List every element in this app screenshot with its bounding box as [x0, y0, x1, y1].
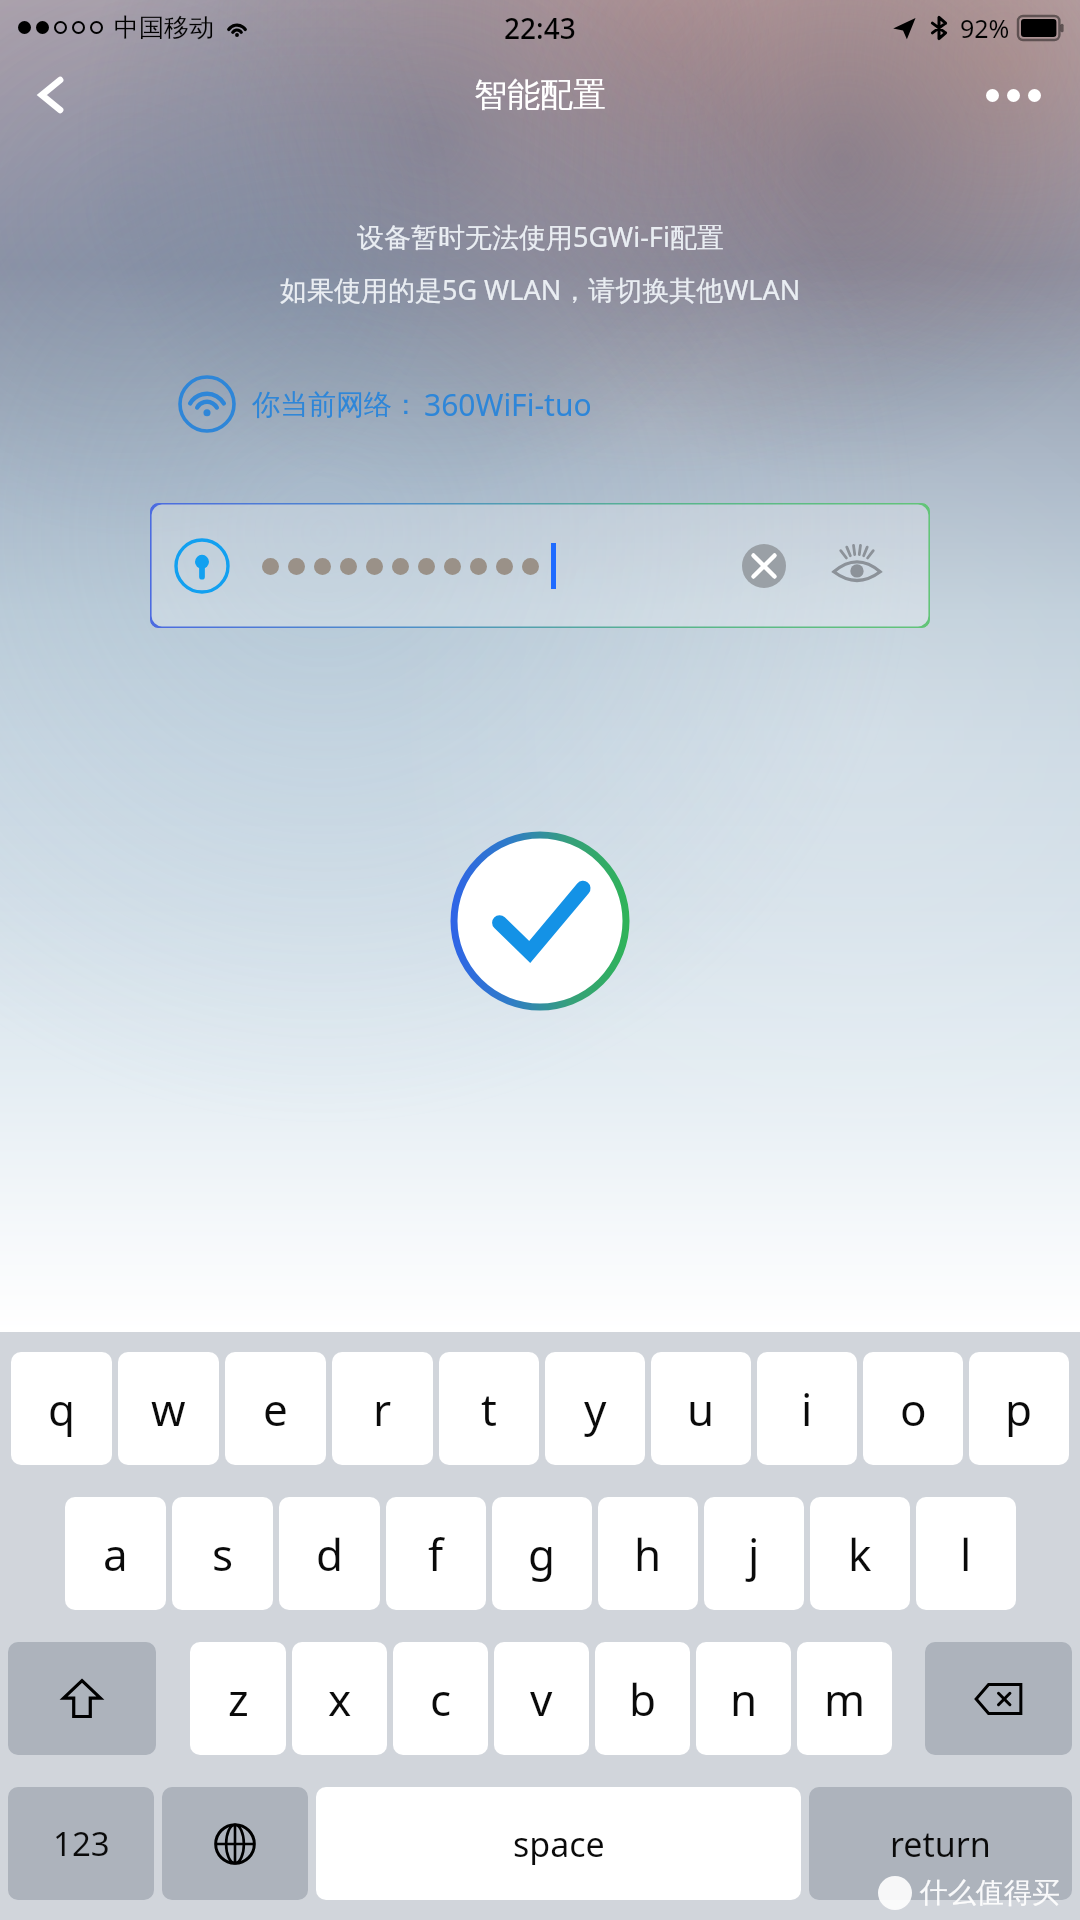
- button[interactable]: Clear: [732, 534, 796, 598]
- button[interactable]: 你当前网络：: [178, 370, 592, 438]
- button[interactable]: b: [595, 1642, 690, 1755]
- button[interactable]: e: [225, 1352, 326, 1465]
- staticText: z: [228, 1669, 249, 1729]
- staticText: f: [428, 1524, 444, 1584]
- staticText: s: [212, 1524, 234, 1584]
- staticText: g: [528, 1524, 556, 1584]
- staticText: p: [1005, 1379, 1033, 1439]
- button[interactable]: a: [65, 1497, 166, 1610]
- staticText: return: [890, 1821, 991, 1867]
- button[interactable]: u: [651, 1352, 751, 1465]
- button[interactable]: More options: [970, 60, 1056, 130]
- staticText: m: [824, 1669, 866, 1729]
- button[interactable]: i: [757, 1352, 857, 1465]
- staticText: w: [151, 1379, 186, 1439]
- button[interactable]: Back: [14, 57, 90, 133]
- button[interactable]: l: [916, 1497, 1016, 1610]
- button[interactable]: k: [810, 1497, 910, 1610]
- button[interactable]: space: [316, 1787, 801, 1900]
- staticText: u: [687, 1379, 715, 1439]
- staticText: l: [960, 1524, 972, 1584]
- button[interactable]: s: [172, 1497, 273, 1610]
- staticText: 你当前网络：: [252, 387, 420, 422]
- staticText: 123: [53, 1821, 110, 1866]
- staticText: q: [48, 1379, 76, 1439]
- button[interactable]: t: [439, 1352, 539, 1465]
- staticText: o: [900, 1379, 927, 1439]
- staticText: 360WiFi-tuo: [424, 384, 592, 425]
- button[interactable]: v: [494, 1642, 589, 1755]
- button[interactable]: w: [118, 1352, 219, 1465]
- button[interactable]: m: [797, 1642, 892, 1755]
- button[interactable]: r: [332, 1352, 433, 1465]
- button[interactable]: g: [492, 1497, 592, 1610]
- staticText: t: [481, 1379, 497, 1439]
- button[interactable]: z: [190, 1642, 286, 1755]
- staticText: 如果使用的是5G WLAN，请切换其他WLAN: [280, 271, 801, 308]
- button[interactable]: c: [393, 1642, 488, 1755]
- button[interactable]: Backspace: [925, 1642, 1072, 1755]
- button[interactable]: Show password: [820, 529, 894, 603]
- staticText: 什么值得买: [920, 1875, 1060, 1910]
- staticText: 中国移动: [114, 12, 214, 43]
- staticText: 智能配置: [474, 74, 606, 116]
- staticText: y: [584, 1379, 607, 1439]
- button[interactable]: h: [598, 1497, 698, 1610]
- staticText: 22:43: [504, 9, 576, 47]
- staticText: h: [634, 1524, 662, 1584]
- staticText: r: [373, 1379, 392, 1439]
- button[interactable]: f: [386, 1497, 486, 1610]
- button[interactable]: x: [292, 1642, 387, 1755]
- staticText: x: [328, 1669, 352, 1729]
- button[interactable]: p: [969, 1352, 1069, 1465]
- staticText: v: [530, 1669, 553, 1729]
- staticText: k: [848, 1524, 872, 1584]
- button[interactable]: o: [863, 1352, 963, 1465]
- button[interactable]: Change keyboard: [162, 1787, 308, 1900]
- staticText: a: [103, 1524, 128, 1584]
- button[interactable]: y: [545, 1352, 645, 1465]
- staticText: i: [801, 1379, 813, 1439]
- staticText: n: [730, 1669, 758, 1729]
- button[interactable]: j: [704, 1497, 804, 1610]
- staticText: d: [316, 1524, 344, 1584]
- button[interactable]: d: [279, 1497, 380, 1610]
- button[interactable]: Clear: [150, 503, 930, 628]
- staticText: e: [263, 1379, 288, 1439]
- button[interactable]: n: [696, 1642, 791, 1755]
- button[interactable]: q: [11, 1352, 112, 1465]
- staticText: c: [430, 1669, 452, 1729]
- button[interactable]: Shift: [8, 1642, 156, 1755]
- staticText: 92%: [960, 11, 1010, 45]
- staticText: space: [513, 1821, 605, 1867]
- staticText: 设备暂时无法使用5GWi-Fi配置: [357, 218, 724, 255]
- staticText: b: [629, 1669, 657, 1729]
- button[interactable]: return: [809, 1787, 1072, 1900]
- staticText: j: [748, 1524, 760, 1584]
- button[interactable]: Numbers: [8, 1787, 154, 1900]
